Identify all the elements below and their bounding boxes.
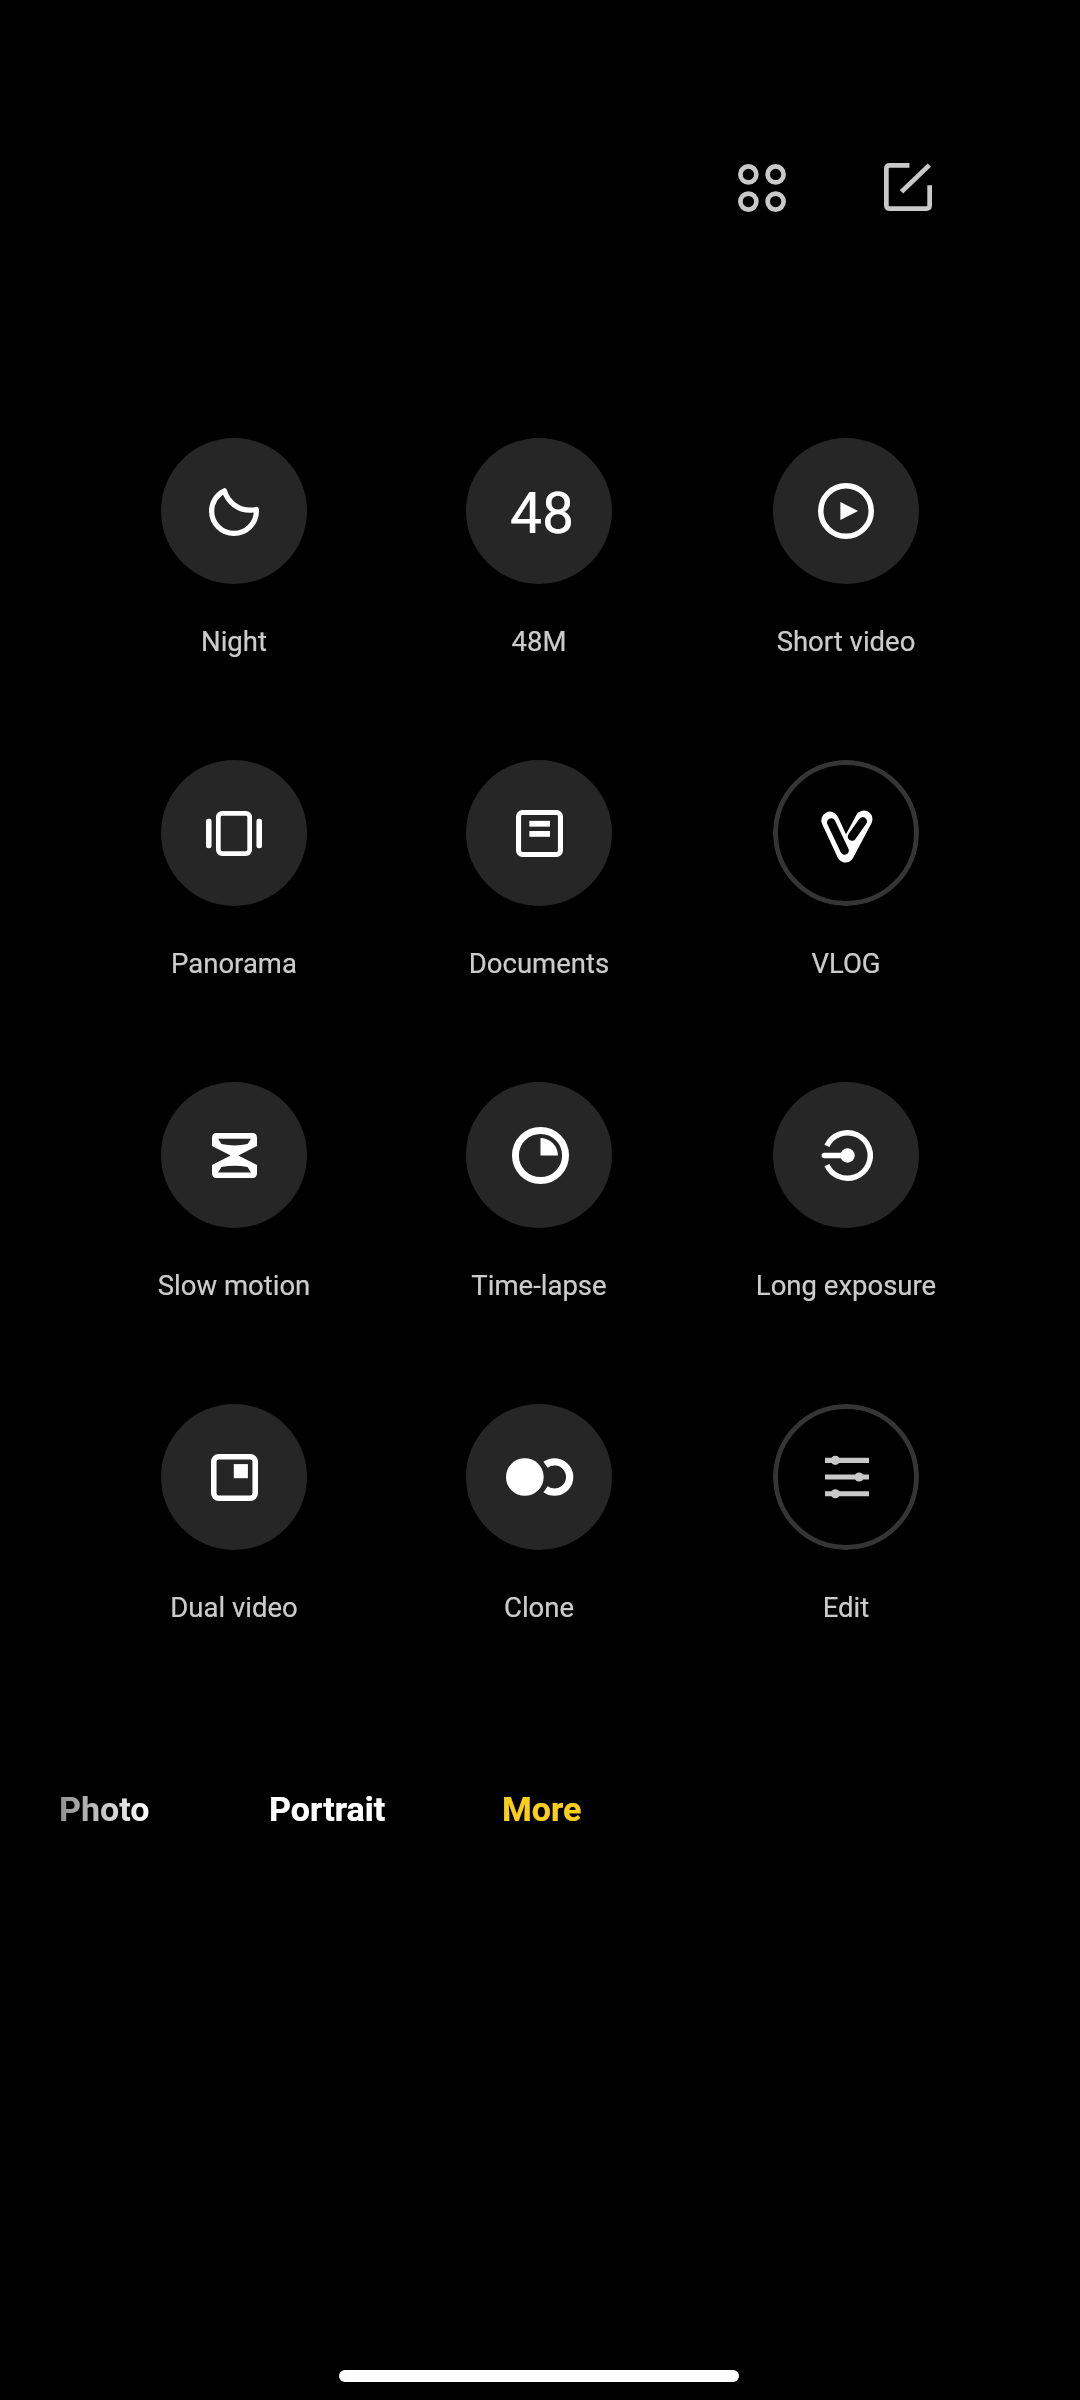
button[interactable]: VLOG — [731, 760, 961, 979]
button[interactable]: Dual video — [119, 1404, 349, 1623]
button[interactable]: Portrait — [269, 1783, 386, 1835]
staticText: More — [502, 1789, 582, 1829]
staticText: 48M — [424, 625, 654, 657]
button[interactable]: Short video — [731, 438, 961, 657]
staticText: Long exposure — [731, 1269, 961, 1301]
staticText: Edit — [731, 1591, 961, 1623]
button[interactable]: Documents — [424, 760, 654, 979]
staticText: Time-lapse — [424, 1269, 654, 1301]
button[interactable]: More — [502, 1783, 582, 1835]
staticText: Clone — [424, 1591, 654, 1623]
staticText: Slow motion — [119, 1269, 349, 1301]
button[interactable]: Night — [119, 438, 349, 657]
staticText: Panorama — [119, 947, 349, 979]
button[interactable]: Photo — [59, 1783, 150, 1835]
staticText: Portrait — [269, 1789, 386, 1829]
button[interactable]: Edit modes — [864, 143, 952, 231]
staticText: Short video — [731, 625, 961, 657]
staticText: VLOG — [731, 947, 961, 979]
button[interactable]: All modes — [718, 144, 806, 232]
button[interactable]: 48 — [424, 438, 654, 657]
staticText: Dual video — [119, 1591, 349, 1623]
button[interactable]: Panorama — [119, 760, 349, 979]
button[interactable]: Slow motion — [119, 1082, 349, 1301]
button[interactable]: Clone — [424, 1404, 654, 1623]
staticText: Documents — [424, 947, 654, 979]
button[interactable]: Time-lapse — [424, 1082, 654, 1301]
button[interactable]: Long exposure — [731, 1082, 961, 1301]
staticText: Night — [119, 625, 349, 657]
staticText: Photo — [59, 1789, 150, 1829]
button[interactable]: Edit — [731, 1404, 961, 1623]
staticText: 48 — [510, 480, 575, 547]
